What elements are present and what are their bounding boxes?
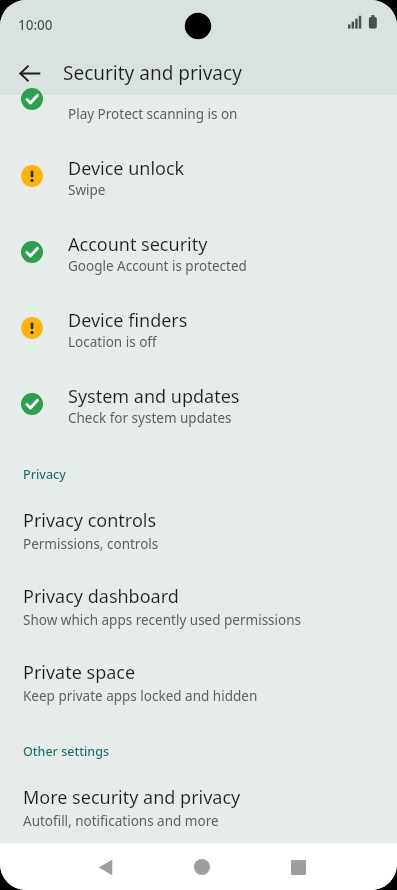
button[interactable] bbox=[0, 769, 397, 831]
staticText: Device finders bbox=[68, 308, 188, 333]
staticText: More security and privacy bbox=[23, 785, 241, 810]
button[interactable]: Back bbox=[7, 51, 51, 95]
staticText: Privacy controls bbox=[23, 508, 157, 533]
staticText: Autofill, notifications and more bbox=[23, 812, 219, 830]
button[interactable] bbox=[0, 95, 397, 127]
button[interactable] bbox=[0, 568, 397, 630]
staticText: Permissions, controls bbox=[23, 535, 159, 553]
button[interactable]: Back bbox=[84, 845, 128, 889]
staticText: Google Account is protected bbox=[68, 257, 247, 275]
button[interactable] bbox=[0, 373, 397, 435]
button[interactable]: Recent apps bbox=[276, 845, 320, 889]
button[interactable] bbox=[0, 145, 397, 207]
staticText: Play Protect scanning is on bbox=[68, 105, 238, 123]
button[interactable] bbox=[0, 297, 397, 359]
staticText: Security and privacy bbox=[63, 60, 242, 86]
staticText: Check for system updates bbox=[68, 409, 232, 427]
staticText: Privacy dashboard bbox=[23, 584, 179, 609]
staticText: Private space bbox=[23, 660, 136, 685]
staticText: 10:00 bbox=[18, 16, 53, 34]
button[interactable] bbox=[0, 644, 397, 706]
staticText: Device unlock bbox=[68, 156, 185, 181]
staticText: Show which apps recently used permission… bbox=[23, 611, 302, 629]
staticText: Swipe bbox=[68, 181, 106, 199]
staticText: Privacy bbox=[23, 466, 66, 483]
button[interactable]: Home bbox=[180, 845, 224, 889]
staticText: Account security bbox=[68, 232, 208, 257]
button[interactable] bbox=[0, 492, 397, 554]
staticText: Keep private apps locked and hidden bbox=[23, 687, 258, 705]
button[interactable] bbox=[0, 221, 397, 283]
staticText: Other settings bbox=[23, 743, 110, 760]
staticText: System and updates bbox=[68, 384, 240, 409]
staticText: Location is off bbox=[68, 333, 157, 351]
